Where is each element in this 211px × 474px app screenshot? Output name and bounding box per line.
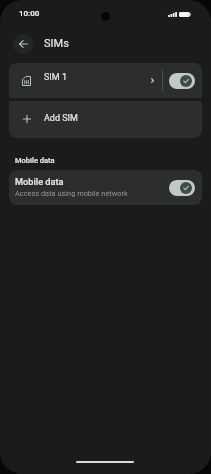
button[interactable]: Toggle <box>169 180 195 196</box>
button[interactable]: Back <box>13 34 33 54</box>
staticText: 10:00 <box>19 9 40 18</box>
staticText: Mobile data <box>15 156 55 165</box>
button[interactable]: Add SIM <box>9 101 202 138</box>
button[interactable]: Toggle <box>169 73 195 89</box>
staticText: Mobile data <box>15 176 64 187</box>
staticText: Access data using mobile network <box>15 189 128 198</box>
button[interactable]: Mobile data <box>9 170 202 205</box>
button[interactable]: SIM 1 <box>9 63 202 98</box>
staticText: Add SIM <box>44 113 78 124</box>
staticText: SIMs <box>44 37 69 50</box>
staticText: SIM 1 <box>44 72 67 83</box>
